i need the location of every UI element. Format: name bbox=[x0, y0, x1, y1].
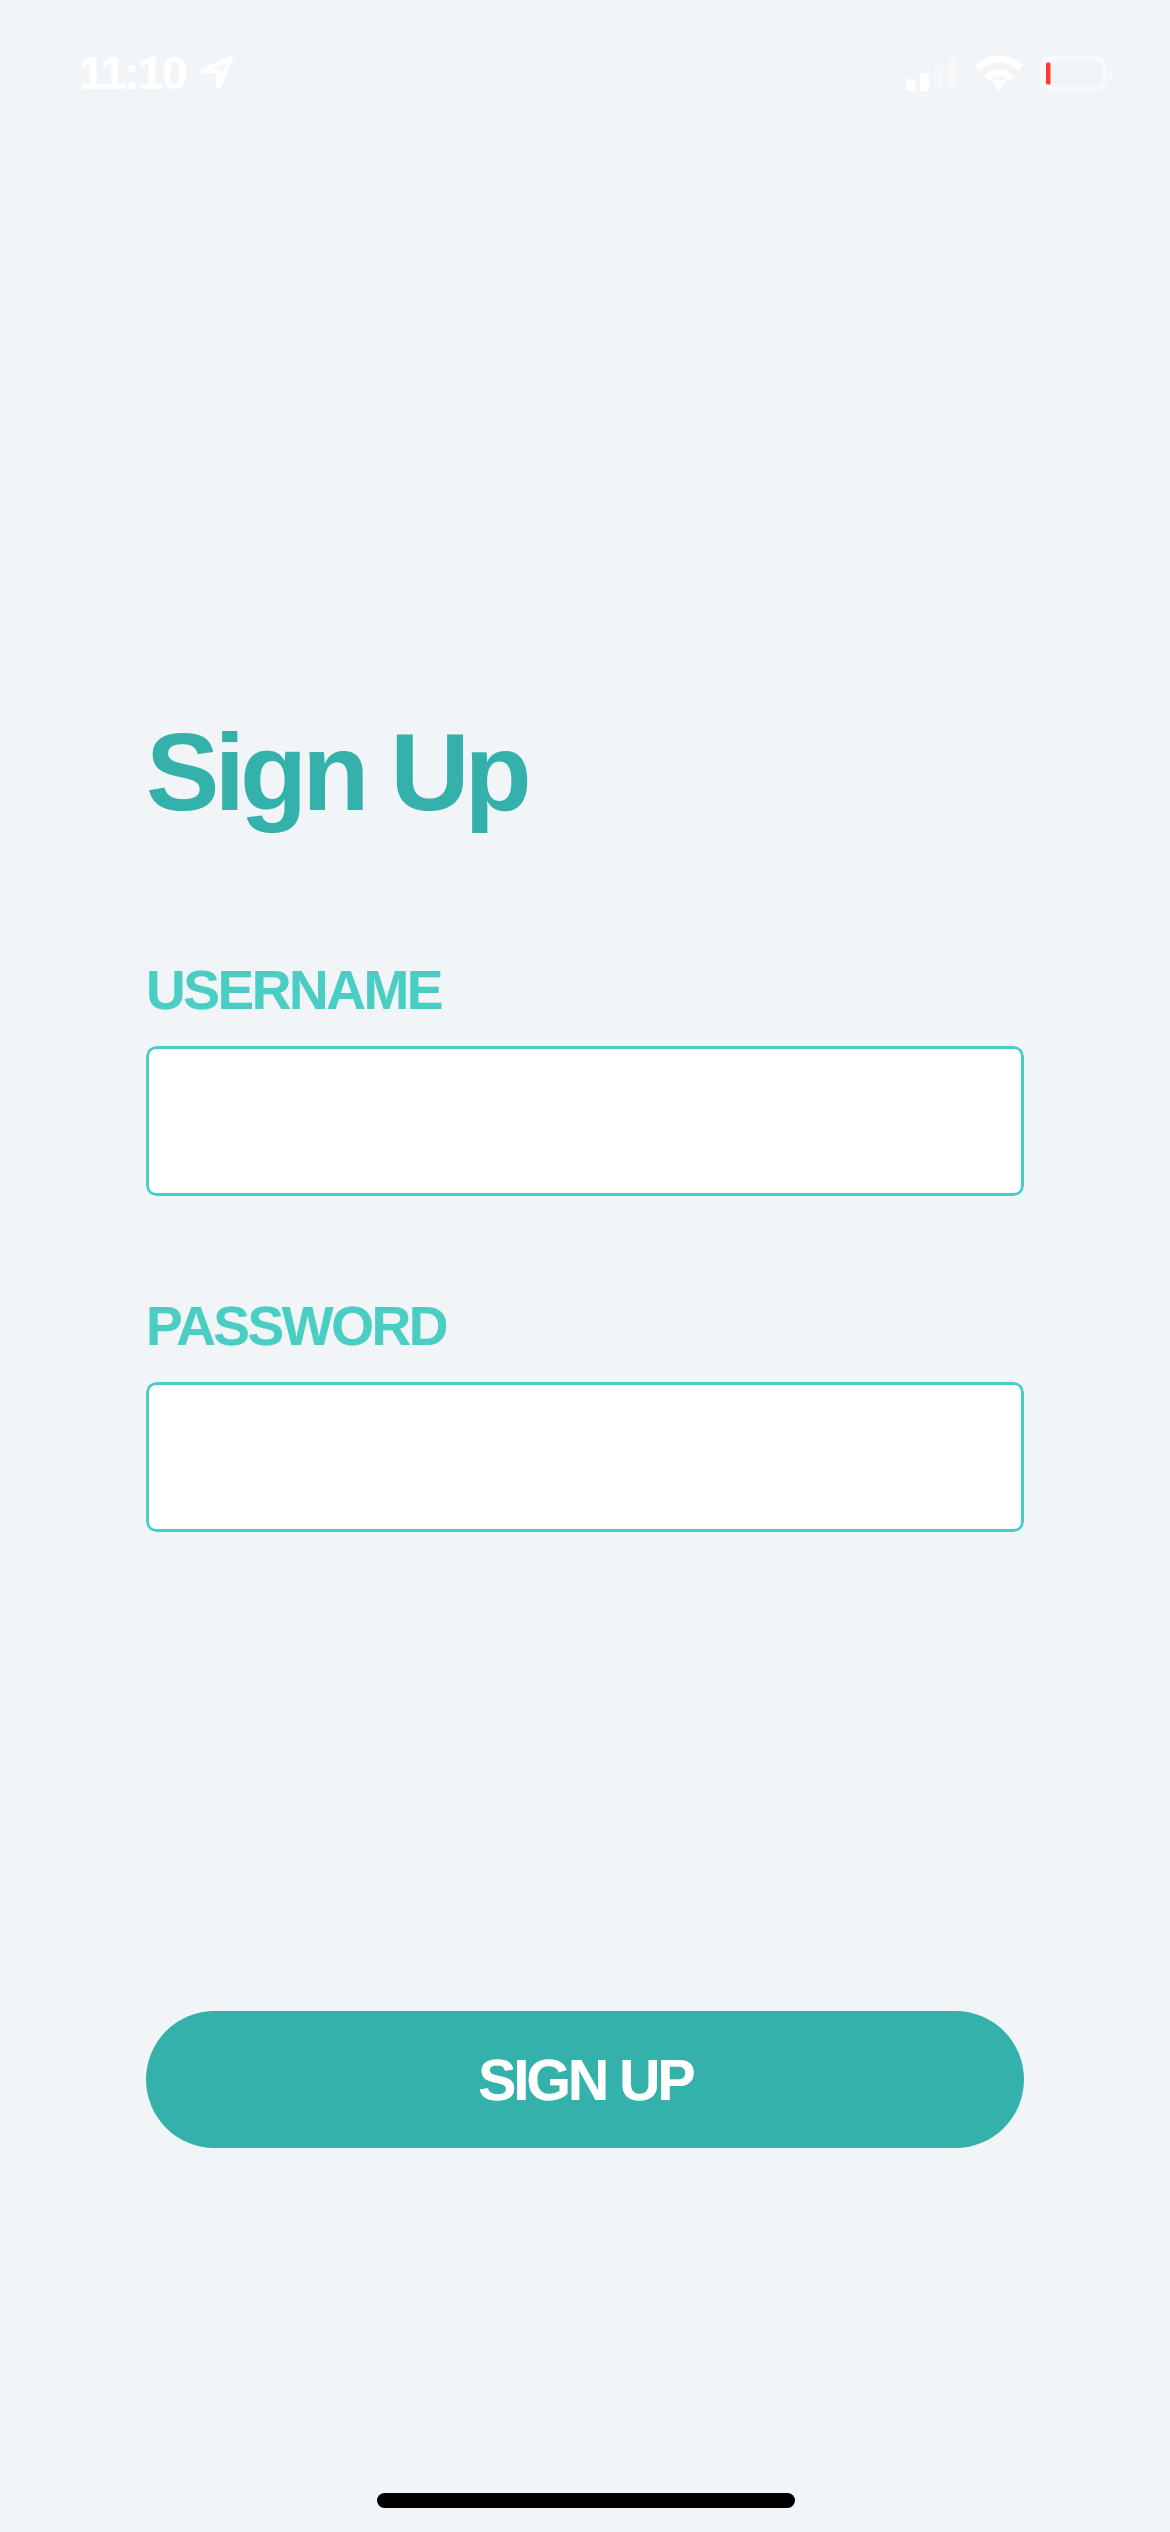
other: Location services active bbox=[196, 52, 240, 96]
button[interactable]: Username bbox=[146, 1046, 1024, 1196]
staticText: Sign Up bbox=[146, 710, 527, 833]
button[interactable]: Password bbox=[146, 1382, 1024, 1532]
other: Cellular signal bbox=[906, 56, 958, 91]
other: Battery low bbox=[1040, 56, 1118, 91]
staticText: 11:10 bbox=[79, 46, 186, 99]
staticText: USERNAME bbox=[146, 959, 441, 1020]
staticText: SIGN UP bbox=[478, 2048, 693, 2112]
button[interactable]: SIGN UP bbox=[146, 2011, 1024, 2148]
staticText: PASSWORD bbox=[146, 1295, 447, 1356]
other: Wi-Fi bbox=[970, 45, 1030, 95]
